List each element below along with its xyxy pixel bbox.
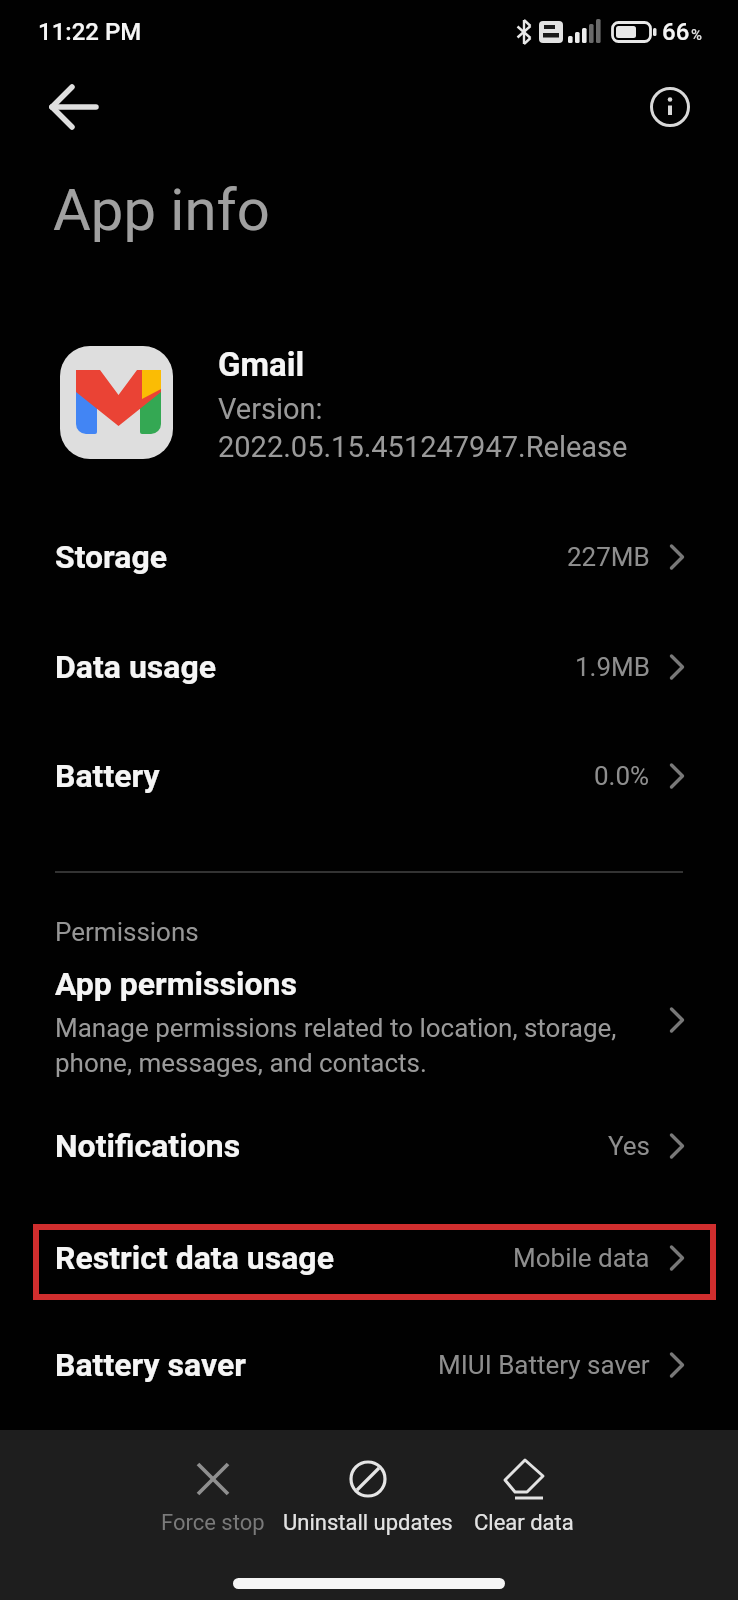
staticText: 2022.05.15.451247947.Release bbox=[218, 430, 628, 464]
button[interactable] bbox=[34, 72, 114, 142]
staticText: Yes bbox=[608, 1131, 650, 1161]
staticText: % bbox=[691, 26, 703, 44]
button[interactable] bbox=[636, 73, 704, 141]
staticText: Data usage bbox=[55, 648, 217, 686]
staticText: App permissions bbox=[55, 965, 297, 1003]
button[interactable]: Force stop bbox=[140, 1444, 286, 1554]
staticText: Battery saver bbox=[55, 1346, 246, 1384]
staticText: 11:22 PM bbox=[38, 18, 142, 46]
staticText: Manage permissions related to location, … bbox=[55, 1013, 617, 1078]
staticText: App info bbox=[53, 176, 270, 244]
button[interactable]: Storage bbox=[0, 502, 738, 612]
staticText: Uninstall updates bbox=[283, 1510, 453, 1536]
button[interactable]: Clear data bbox=[451, 1444, 597, 1554]
button[interactable]: Restrict data usage bbox=[0, 1203, 738, 1313]
button[interactable]: App permissions bbox=[0, 940, 738, 1100]
button[interactable]: Notifications bbox=[0, 1091, 738, 1201]
staticText: Storage bbox=[55, 538, 168, 576]
staticText: Battery bbox=[55, 757, 160, 795]
staticText: Clear data bbox=[474, 1510, 574, 1536]
staticText: MIUI Battery saver bbox=[438, 1350, 650, 1380]
button[interactable]: Battery bbox=[0, 721, 738, 831]
button[interactable]: Battery saver bbox=[0, 1310, 738, 1420]
button[interactable]: Uninstall updates bbox=[258, 1444, 478, 1554]
staticText: 1.9MB bbox=[575, 652, 650, 682]
staticText: Notifications bbox=[55, 1127, 241, 1165]
staticText: Mobile data bbox=[513, 1243, 650, 1273]
staticText: 227MB bbox=[567, 542, 650, 572]
staticText: Force stop bbox=[161, 1510, 265, 1536]
staticText: 0.0% bbox=[594, 761, 650, 791]
button[interactable]: Data usage bbox=[0, 612, 738, 722]
staticText: Version: bbox=[218, 392, 323, 426]
staticText: Permissions bbox=[55, 917, 199, 947]
staticText: Restrict data usage bbox=[55, 1239, 334, 1277]
staticText: Gmail bbox=[218, 345, 305, 384]
staticText: 66 bbox=[662, 18, 690, 46]
